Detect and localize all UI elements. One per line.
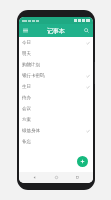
button[interactable]: 备忘 — [19, 136, 93, 147]
staticText: 今日 — [22, 40, 86, 46]
button[interactable]: 方案 — [19, 114, 93, 125]
staticText: 备忘 — [22, 139, 90, 145]
button[interactable]: Add note — [77, 156, 88, 167]
staticText: 生日 — [22, 84, 86, 90]
staticText: 明天 — [22, 51, 90, 57]
staticText: 记事本 — [47, 27, 65, 35]
button[interactable]: 今日 — [19, 37, 93, 48]
button[interactable]: 会议 — [19, 103, 93, 114]
button[interactable]: 明天 — [19, 48, 93, 59]
button[interactable]: Menu — [21, 26, 30, 35]
button[interactable]: 银行卡密码 — [19, 70, 93, 81]
staticText: 方案 — [22, 117, 90, 123]
button[interactable]: 生日 — [19, 81, 93, 92]
staticText: 待办 — [22, 95, 90, 101]
button[interactable]: Search — [82, 26, 91, 35]
staticText: 会议 — [22, 106, 90, 112]
button[interactable]: 锻炼身体 — [19, 125, 93, 136]
staticText: 购物计划 — [22, 62, 90, 68]
staticText: 锻炼身体 — [22, 128, 86, 134]
button[interactable]: Recent apps — [72, 172, 83, 183]
staticText: 银行卡密码 — [22, 73, 86, 79]
button[interactable]: Home — [51, 172, 62, 183]
button[interactable]: Back — [29, 172, 40, 183]
button[interactable]: 购物计划 — [19, 59, 93, 70]
button[interactable]: 待办 — [19, 92, 93, 103]
